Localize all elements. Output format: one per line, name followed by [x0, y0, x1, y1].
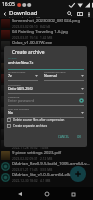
staticText: 7z	[8, 73, 35, 78]
button[interactable]: New archive	[70, 166, 86, 182]
staticText: No	[8, 110, 81, 115]
staticText: 2023-02-10 14:02 4.1 MB	[12, 58, 51, 62]
button[interactable]: Show password	[79, 98, 84, 103]
button[interactable]: notes_backup.txt	[0, 139, 93, 150]
staticText: 2023-02-14 10:02 15.2 MB	[12, 47, 53, 51]
button[interactable]: 9 piece settings 2023.pdf	[0, 150, 93, 161]
staticText: Compression level	[44, 70, 66, 73]
button[interactable]: DAdrian_Rev0.9.5.build_1005-arm64-v8a.ap…	[0, 161, 93, 172]
staticText: Archive	[8, 56, 17, 59]
button[interactable]: notes.txt	[0, 84, 93, 95]
staticText: /storage/emulated/0	[9, 17, 41, 18]
staticText: 2023-02-08 11:21 2.9 MB	[12, 69, 51, 73]
button[interactable]: Home	[41, 188, 53, 200]
button[interactable]: file_01.bin	[0, 51, 93, 62]
staticText: Archive format	[8, 70, 26, 73]
staticText: Odax_v1.00.07W.exe	[12, 40, 53, 46]
staticText: archive_old.zip	[12, 95, 41, 101]
staticText: Screenshot_20230302_081024.png	[12, 18, 81, 24]
staticText: setup_installer.exe	[12, 106, 48, 112]
button[interactable]: Archive format	[8, 70, 38, 81]
button[interactable]: Back	[14, 188, 26, 200]
button[interactable]: Split into volumes	[8, 107, 84, 118]
button[interactable]: report.pdf	[0, 73, 93, 84]
button[interactable]: backup_2022_12.tar.gz	[0, 128, 93, 139]
button[interactable]: More options	[85, 10, 93, 18]
button[interactable]: View mode	[74, 9, 85, 18]
staticText: DAdrian_lite_v1.0.0-arm64-v8a.apk	[12, 172, 80, 178]
button[interactable]: Search	[64, 9, 74, 18]
staticText: 2023-02-06 17:44 1.1 MB	[12, 80, 51, 84]
staticText: 9 piece settings 2023.pdf	[12, 150, 61, 156]
staticText: Data (AES-256)	[8, 86, 81, 91]
staticText: photo_2023_02.jpg	[12, 62, 50, 68]
button[interactable]: Recent apps	[67, 188, 79, 200]
staticText: 2022-12-20 09:02 88 MB	[12, 113, 50, 117]
staticText: archiveNew.7z	[8, 60, 34, 65]
button[interactable]: Odax_v1.00.07W.exe	[0, 40, 93, 51]
button[interactable]: Delete source files after compression	[7, 118, 85, 122]
staticText: Split into volumes	[8, 107, 29, 110]
button[interactable]: Back	[0, 9, 9, 18]
button[interactable]: Create separate archives	[7, 124, 85, 128]
staticText: 2023-02-02 09:31 2.12 MB	[12, 157, 53, 161]
staticText: music_track_04.mp3	[12, 117, 52, 123]
staticText: Normal	[44, 73, 81, 78]
button[interactable]: Encryption	[8, 83, 84, 94]
button[interactable]: music_track_04.mp3	[0, 117, 93, 128]
staticText: CANCEL	[58, 135, 70, 139]
staticText: Encryption	[8, 83, 21, 86]
staticText: 04 Painting Traveling 1-6.jpg	[12, 29, 68, 35]
button[interactable]: archive_old.zip	[0, 95, 93, 106]
staticText: 2022-11-28 16:02 14 kB	[12, 146, 49, 150]
staticText: OK	[77, 135, 82, 139]
staticText: 2023-01-21 11:45 33.5 MB	[12, 168, 53, 172]
staticText: 2022-12-30 18:02 4.1 MB	[12, 179, 51, 183]
button[interactable]: photo_2023_02.jpg	[0, 62, 93, 73]
staticText: Enter password	[8, 98, 79, 103]
staticText: DAdrian_Rev0.9.5.build_1005-arm64-v8a.ap…	[12, 161, 90, 167]
staticText: Download	[9, 9, 38, 17]
staticText: Create archive	[12, 49, 45, 56]
staticText: Password	[8, 95, 20, 98]
button[interactable]: 04 Painting Traveling 1-6.jpg	[0, 29, 93, 40]
staticText: file_01.bin	[12, 51, 32, 57]
staticText: 2023-03-02 08:10 842 kB	[12, 25, 51, 29]
button[interactable]: setup_installer.exe	[0, 106, 93, 117]
button[interactable]: DAdrian_lite_v1.0.0-arm64-v8a.apk	[0, 172, 93, 183]
staticText: Delete source files after compression	[13, 118, 65, 122]
button[interactable]: Compression level	[44, 70, 84, 81]
button[interactable]: CANCEL	[56, 134, 72, 140]
staticText: notes.txt	[12, 84, 30, 90]
staticText: 2023-02-03 10:50 56 MB	[12, 102, 50, 106]
staticText: 2023-02-04 13:03 12 kB	[12, 91, 49, 95]
staticText: Create separate archives	[13, 124, 48, 128]
button[interactable]: Screenshot_20230302_081024.png	[0, 18, 93, 29]
staticText: 16:05	[2, 1, 15, 8]
button[interactable]: OK	[75, 134, 84, 140]
staticText: 2023-03-01 15:14 1.42 MB	[12, 36, 53, 40]
staticText: 2022-12-11 22:15 6.4 MB	[12, 124, 51, 128]
